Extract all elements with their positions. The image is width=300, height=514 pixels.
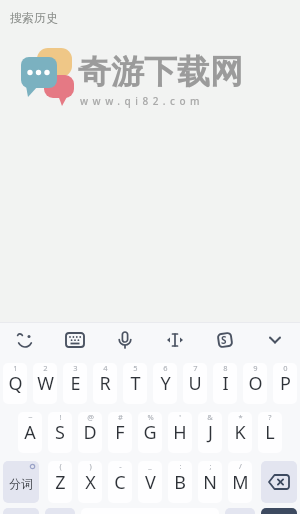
button[interactable]: 2 bbox=[33, 363, 57, 404]
button[interactable]: 9 bbox=[243, 363, 267, 404]
staticText: 5 bbox=[133, 363, 138, 373]
staticText: 奇游下载网 bbox=[78, 51, 243, 93]
staticText: 7 bbox=[193, 363, 198, 373]
button[interactable]: 8 bbox=[213, 363, 237, 404]
staticText: 2 bbox=[43, 363, 48, 373]
staticText: ~ bbox=[28, 412, 33, 422]
staticText: ? bbox=[268, 412, 272, 422]
staticText: D bbox=[83, 420, 97, 445]
staticText: U bbox=[188, 371, 202, 396]
staticText: 3 bbox=[73, 363, 78, 373]
button[interactable]: ? bbox=[258, 412, 282, 453]
button[interactable]: 5 bbox=[123, 363, 147, 404]
staticText: X bbox=[85, 470, 96, 495]
button[interactable]: 3 bbox=[63, 363, 87, 404]
staticText: 1 bbox=[13, 363, 18, 373]
button[interactable]: ! bbox=[48, 412, 72, 453]
staticText: S bbox=[221, 333, 227, 347]
staticText: 分词 bbox=[9, 476, 33, 491]
staticText: N bbox=[203, 470, 217, 495]
staticText: J bbox=[208, 420, 213, 445]
staticText: L bbox=[265, 420, 275, 445]
button[interactable]: * bbox=[228, 412, 252, 453]
staticText: ( bbox=[59, 461, 62, 471]
staticText: F bbox=[115, 420, 125, 445]
button[interactable]: ) bbox=[78, 461, 102, 503]
button[interactable]: 1 bbox=[3, 363, 27, 404]
staticText: * bbox=[238, 412, 243, 422]
staticText: K bbox=[234, 420, 246, 445]
staticText: W bbox=[37, 371, 54, 396]
staticText: : bbox=[179, 461, 182, 471]
button[interactable]: 4 bbox=[93, 363, 117, 404]
staticText: R bbox=[99, 371, 111, 396]
staticText: E bbox=[70, 371, 81, 396]
staticText: 9 bbox=[253, 363, 258, 373]
staticText: V bbox=[145, 470, 156, 495]
staticText: ) bbox=[89, 461, 92, 471]
staticText: 搜索历史 bbox=[10, 10, 58, 25]
button[interactable] bbox=[261, 508, 297, 514]
staticText: 0 bbox=[283, 363, 288, 373]
button[interactable] bbox=[225, 508, 255, 514]
button[interactable]: : bbox=[168, 461, 192, 503]
button[interactable]: ; bbox=[198, 461, 222, 503]
staticText: % bbox=[147, 412, 154, 422]
button[interactable] bbox=[261, 461, 297, 503]
staticText: _ bbox=[148, 461, 152, 471]
button[interactable]: / bbox=[228, 461, 252, 503]
staticText: C bbox=[114, 470, 126, 495]
staticText: # bbox=[118, 412, 123, 422]
staticText: M bbox=[232, 470, 249, 495]
staticText: Y bbox=[160, 371, 171, 396]
staticText: / bbox=[239, 461, 242, 471]
button[interactable]: % bbox=[138, 412, 162, 453]
staticText: O bbox=[248, 371, 263, 396]
staticText: Q bbox=[8, 371, 23, 396]
staticText: Z bbox=[55, 470, 66, 495]
staticText: B bbox=[174, 470, 186, 495]
staticText: ' bbox=[179, 412, 181, 422]
staticText: @ bbox=[87, 412, 94, 422]
button[interactable]: ( bbox=[48, 461, 72, 503]
button[interactable]: & bbox=[198, 412, 222, 453]
button[interactable]: - bbox=[108, 461, 132, 503]
staticText: ! bbox=[59, 412, 62, 422]
button[interactable] bbox=[45, 508, 75, 514]
button[interactable]: S bbox=[0, 322, 300, 356]
staticText: P bbox=[280, 371, 291, 396]
button[interactable]: 6 bbox=[153, 363, 177, 404]
staticText: H bbox=[173, 420, 187, 445]
staticText: G bbox=[143, 420, 157, 445]
staticText: 8 bbox=[223, 363, 228, 373]
staticText: www.qi82.com bbox=[80, 94, 205, 108]
button[interactable] bbox=[3, 508, 39, 514]
button[interactable]: @ bbox=[78, 412, 102, 453]
button[interactable]: 7 bbox=[183, 363, 207, 404]
staticText: A bbox=[24, 420, 36, 445]
staticText: 4 bbox=[103, 363, 108, 373]
button[interactable]: 分词 bbox=[3, 461, 39, 503]
button[interactable]: 0 bbox=[273, 363, 297, 404]
button[interactable]: # bbox=[108, 412, 132, 453]
staticText: T bbox=[130, 371, 141, 396]
staticText: 6 bbox=[163, 363, 168, 373]
staticText: S bbox=[55, 420, 65, 445]
button[interactable]: ~ bbox=[18, 412, 42, 453]
staticText: & bbox=[207, 412, 213, 422]
staticText: - bbox=[119, 461, 122, 471]
button[interactable]: _ bbox=[138, 461, 162, 503]
button[interactable]: ' bbox=[168, 412, 192, 453]
staticText: I bbox=[222, 371, 229, 396]
staticText: ; bbox=[209, 461, 212, 471]
